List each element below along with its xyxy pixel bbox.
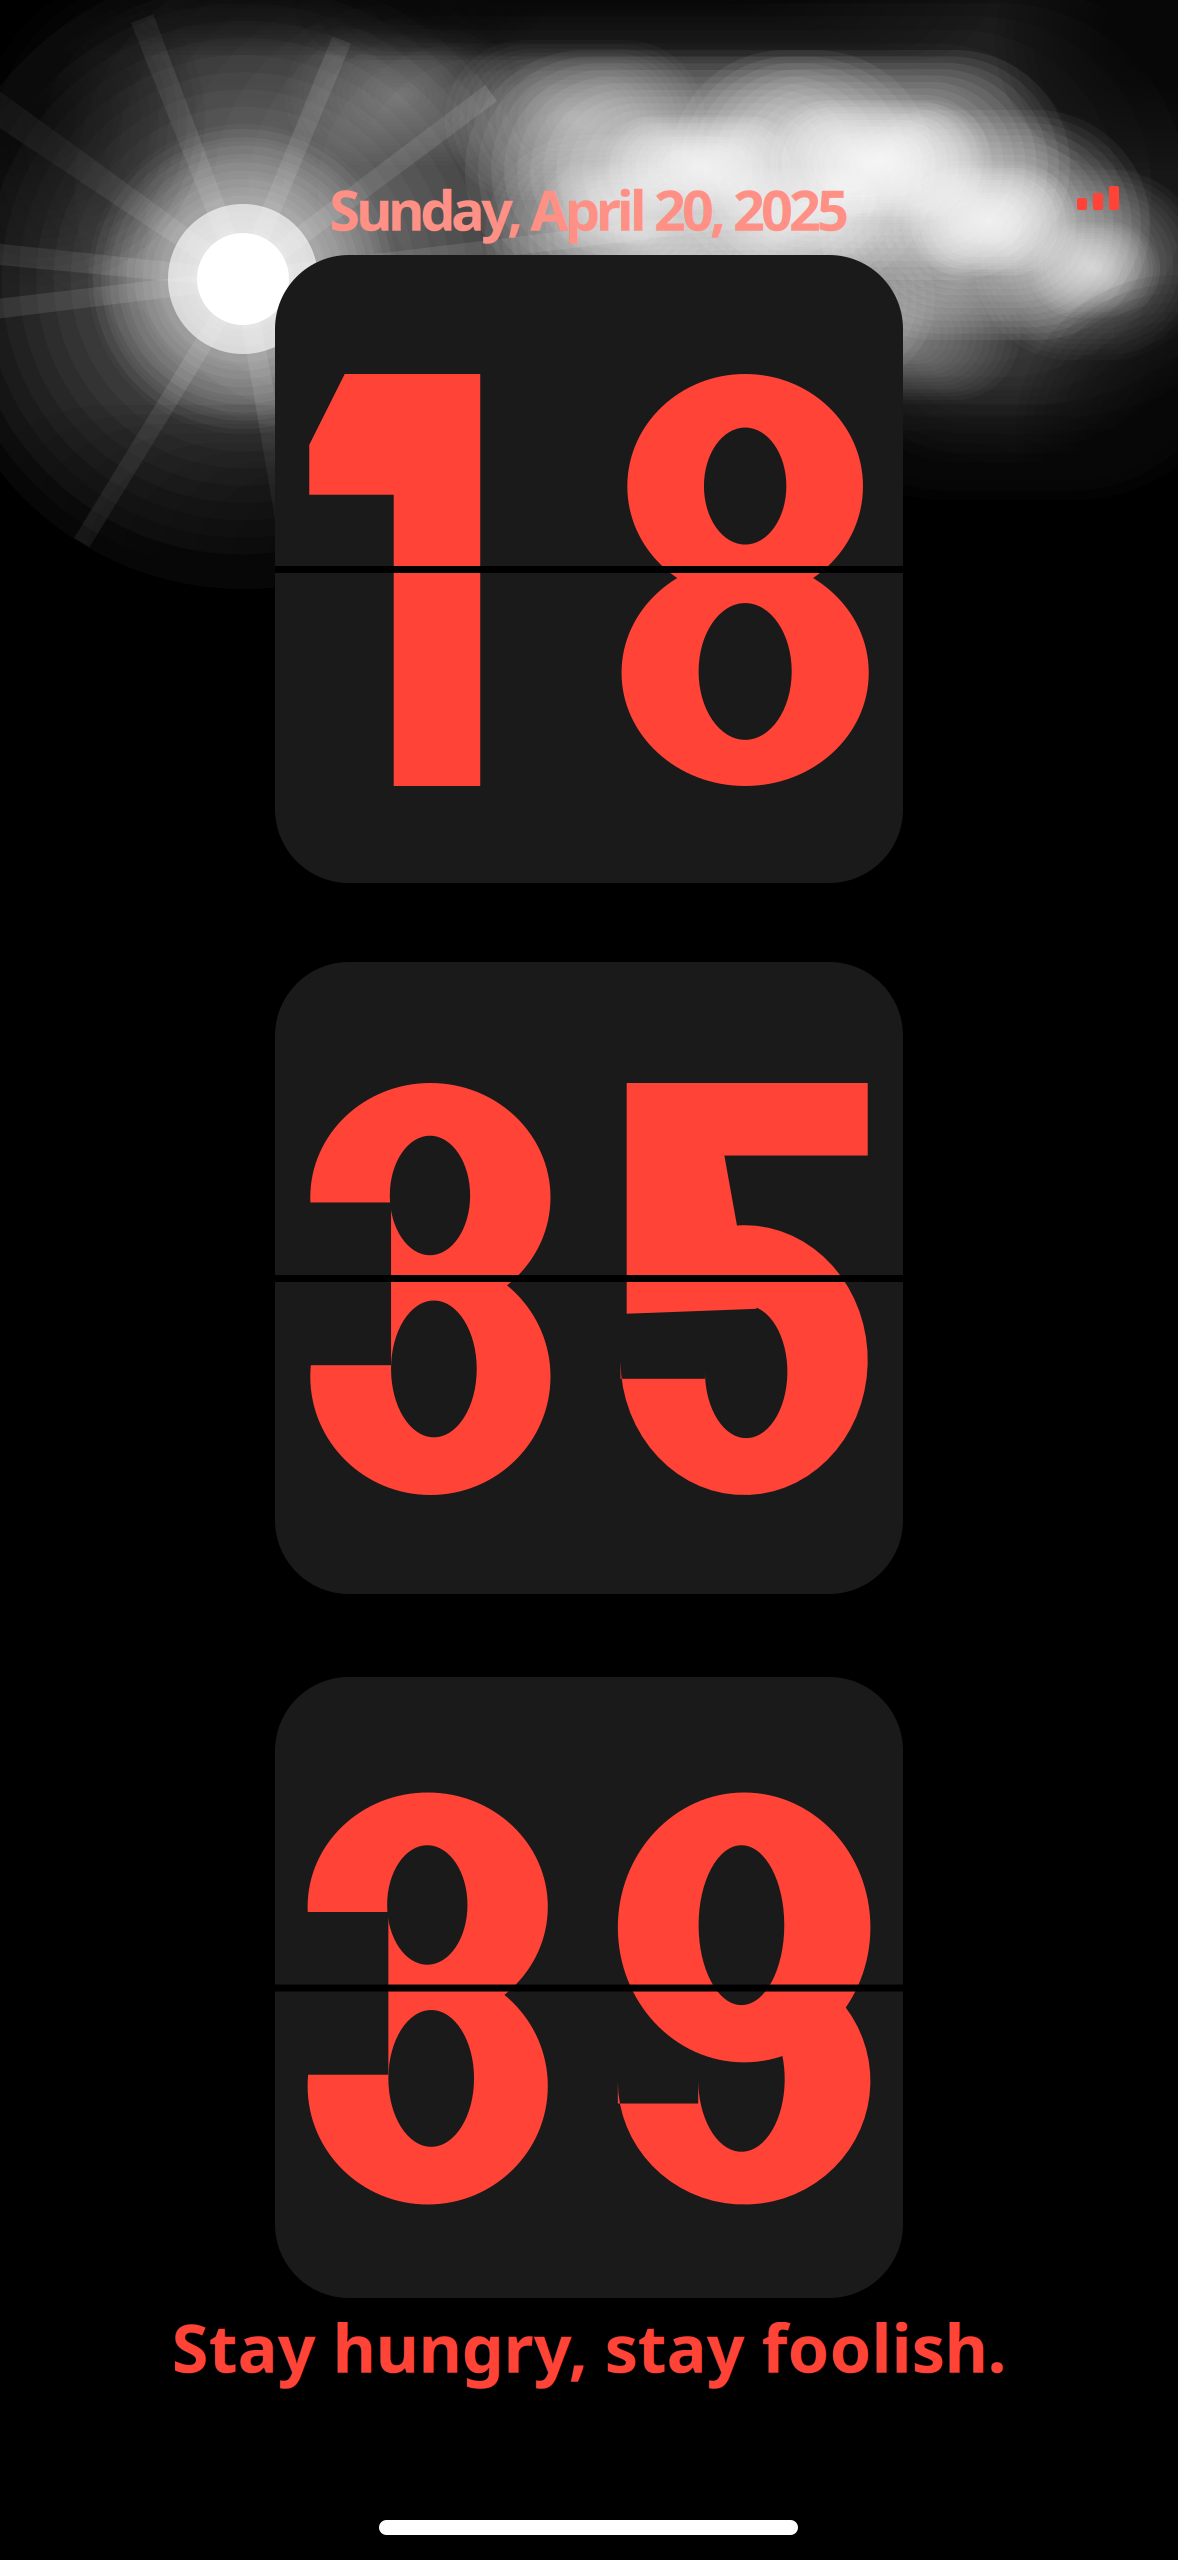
staticText: Stay hungry, stay foolish. [171, 2303, 1006, 2391]
button[interactable]: Cellular signal strength [1077, 186, 1123, 210]
staticText: Sunday, April 20, 2025 [329, 172, 849, 246]
